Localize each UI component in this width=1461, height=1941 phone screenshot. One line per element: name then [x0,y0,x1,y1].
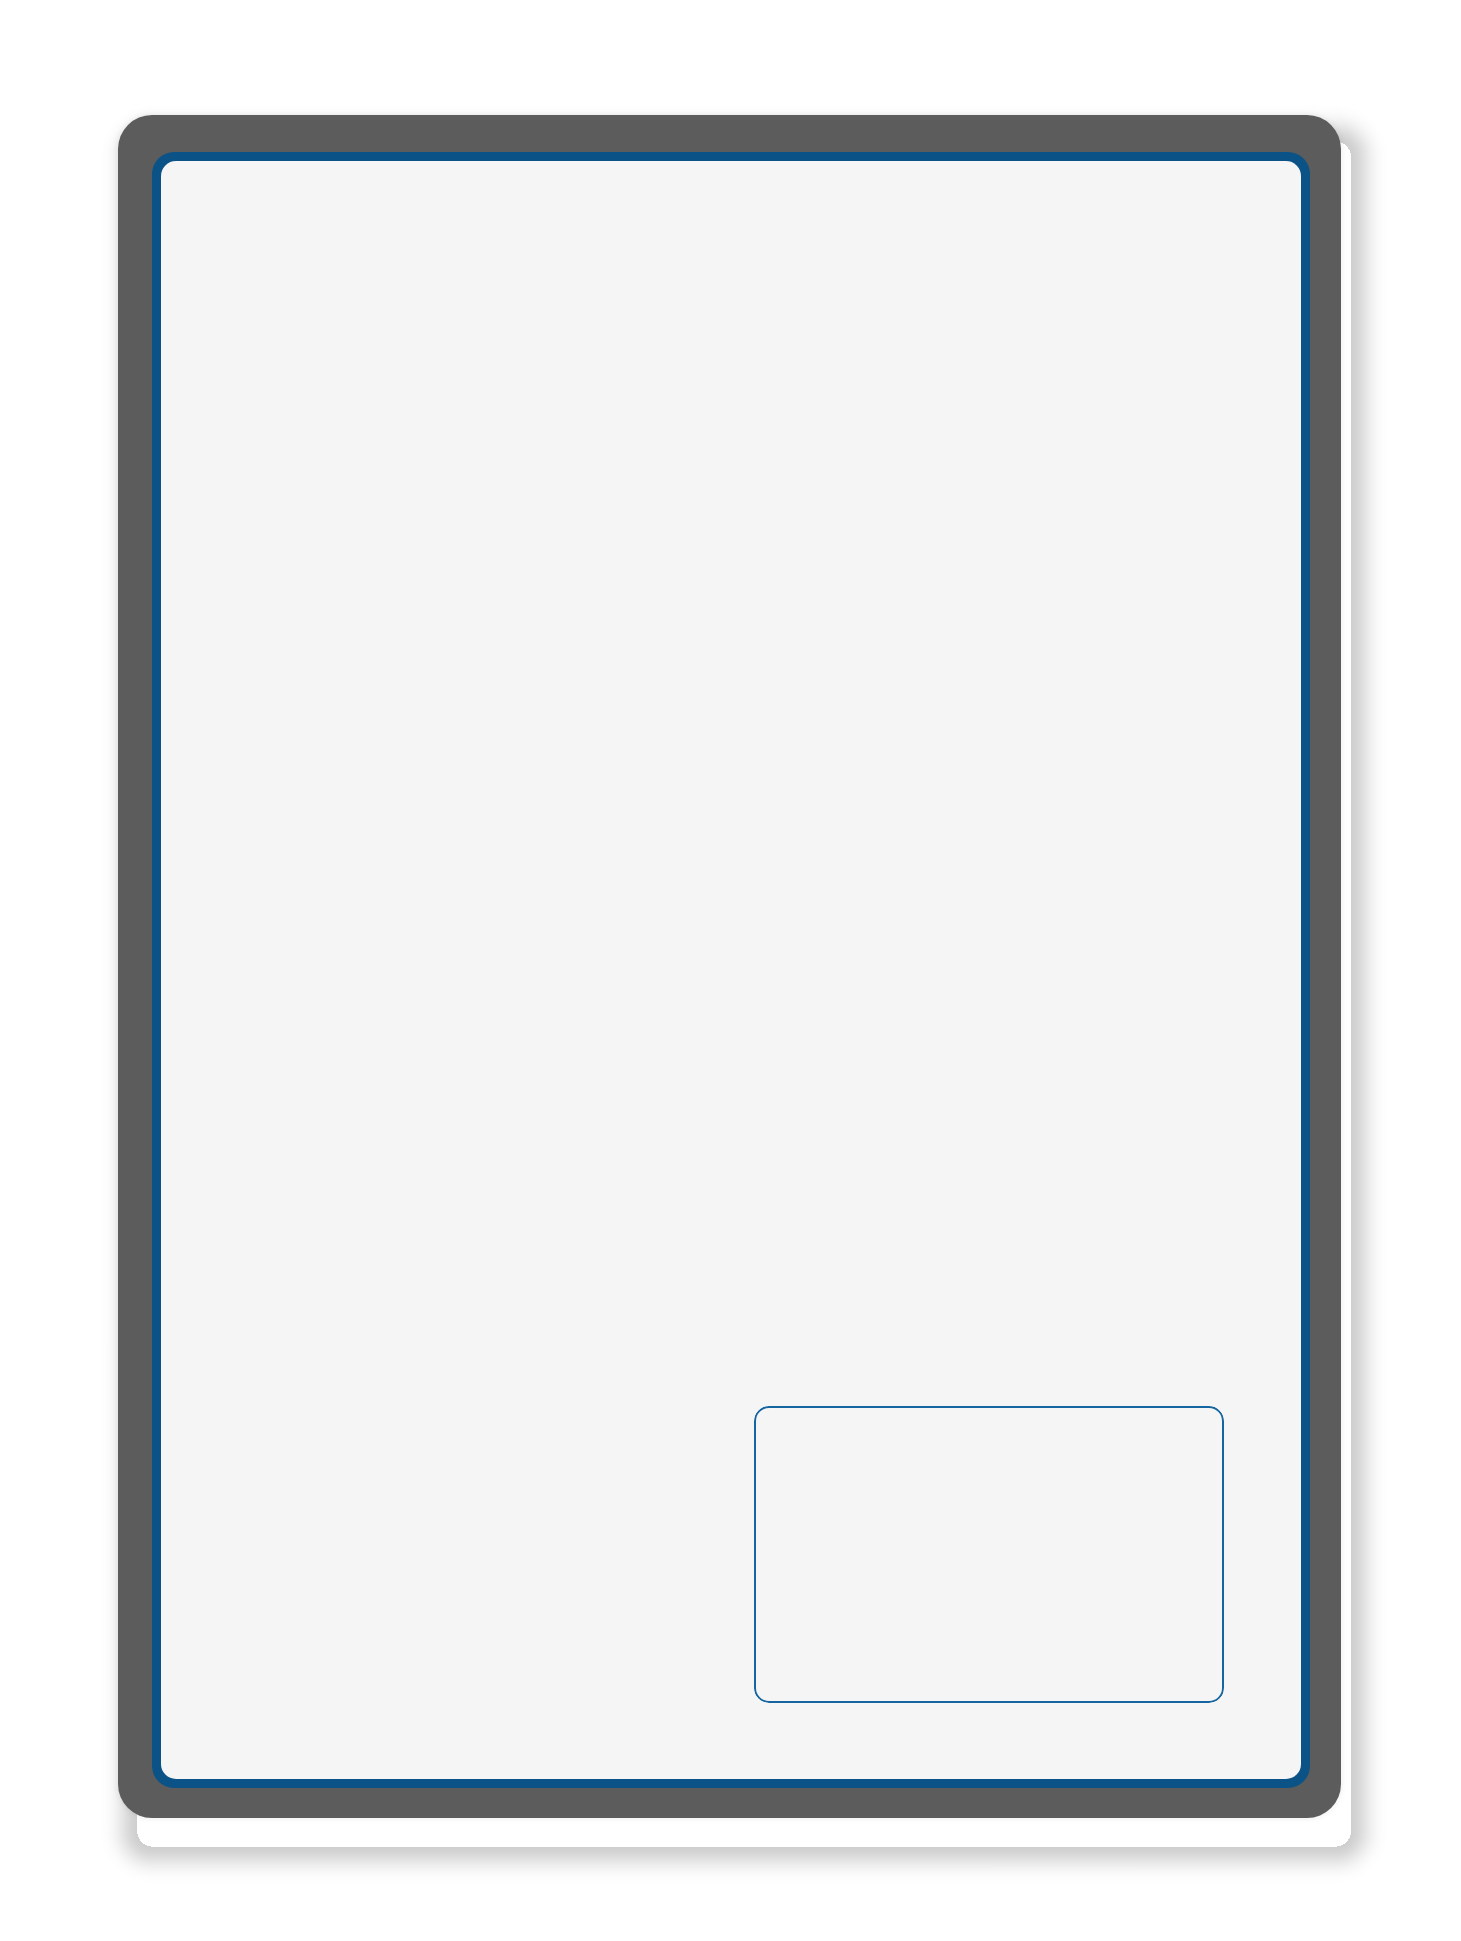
button[interactable]: Card [754,1406,1224,1703]
